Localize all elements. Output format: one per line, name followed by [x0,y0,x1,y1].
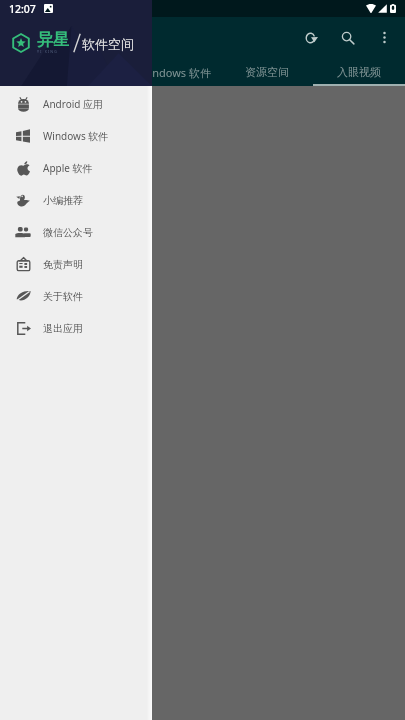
button[interactable]: Windows 软件 [0,120,152,152]
staticText: Windows 软件 [139,65,211,80]
button[interactable]: 微信公众号 [0,216,152,248]
button[interactable]: 关于软件 [0,280,152,312]
staticText: Windows 软件 [43,129,109,143]
staticText: 资源空间 [245,65,289,79]
staticText: 退出应用 [43,322,83,335]
staticText: 软件空间 [82,36,134,52]
button[interactable]: 退出应用 [0,312,152,344]
staticText: Apple 软件 [43,161,93,175]
button[interactable]: Refresh [292,17,329,58]
staticText: 关于软件 [43,290,83,303]
staticText: 小编推荐 [43,194,83,207]
staticText: YI XING [37,49,58,54]
staticText: 入眼视频 [337,65,381,79]
button[interactable]: 小编推荐 [0,184,152,216]
staticText: 异星 [37,30,69,50]
button[interactable]: 资源空间 [221,58,313,86]
button[interactable]: Search [329,17,366,58]
button[interactable] [0,86,405,720]
staticText: 微信公众号 [43,226,93,239]
button[interactable]: Windows 软件 [129,58,221,86]
staticText: 12:07 [9,2,36,16]
button[interactable]: Apple 软件 [0,152,152,184]
button[interactable]: Android 应用 [37,58,129,86]
staticText: Android 应用 [43,97,104,111]
staticText: Android 应用 [50,65,117,80]
button[interactable]: Android 应用 [0,88,152,120]
button[interactable]: 入眼视频 [313,58,405,86]
staticText: 免责声明 [43,258,83,271]
button[interactable]: More options [366,17,403,58]
button[interactable]: 免责声明 [0,248,152,280]
